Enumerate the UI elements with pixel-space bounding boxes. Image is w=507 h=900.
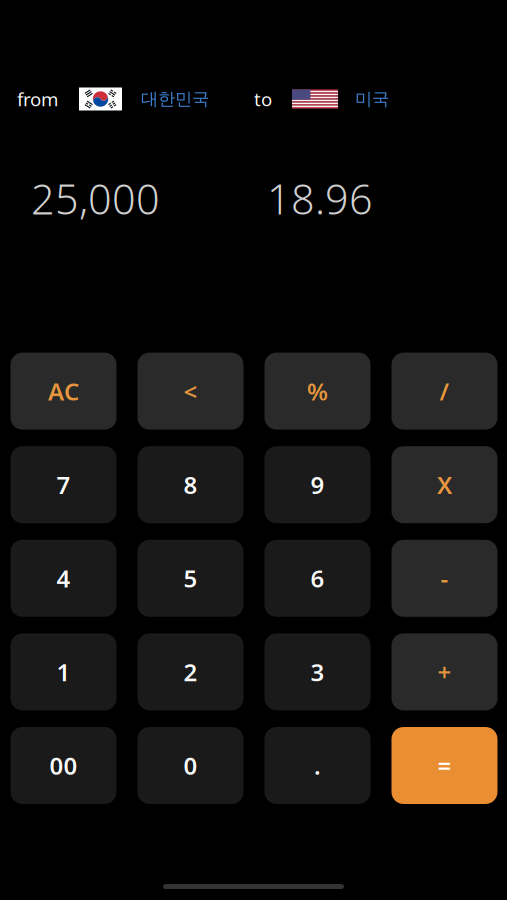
staticText: 3 (310, 656, 324, 688)
button[interactable]: 5 (137, 540, 243, 617)
staticText: 25,000 (31, 171, 160, 226)
button[interactable]: 9 (264, 446, 370, 523)
button[interactable]: 대한민국 (79, 87, 209, 110)
button[interactable]: 미국 (292, 88, 389, 110)
button[interactable]: 3 (264, 633, 370, 710)
button[interactable]: 00 (10, 727, 116, 804)
button[interactable]: / (391, 353, 497, 430)
staticText: . (314, 750, 321, 781)
button[interactable]: AC (10, 353, 116, 430)
staticText: from (17, 87, 58, 111)
staticText: 대한민국 (141, 88, 209, 110)
button[interactable]: % (264, 353, 370, 430)
staticText: 18.96 (267, 171, 373, 226)
button[interactable]: 4 (10, 540, 116, 617)
button[interactable]: . (264, 727, 370, 804)
button[interactable]: 1 (10, 633, 116, 710)
staticText: 4 (56, 562, 70, 594)
staticText: X (437, 469, 452, 501)
staticText: 1 (56, 656, 70, 688)
staticText: + (437, 656, 451, 688)
staticText: - (440, 562, 448, 594)
staticText: AC (48, 375, 79, 407)
button[interactable]: 6 (264, 540, 370, 617)
button[interactable]: - (391, 540, 497, 617)
staticText: = (437, 750, 451, 781)
staticText: 미국 (355, 88, 389, 110)
staticText: 00 (49, 750, 77, 781)
staticText: % (307, 375, 328, 407)
button[interactable]: = (391, 727, 497, 804)
staticText: to (254, 87, 272, 111)
staticText: / (439, 375, 449, 407)
button[interactable]: + (391, 633, 497, 710)
staticText: < (183, 375, 197, 407)
staticText: 0 (183, 750, 197, 781)
staticText: 9 (310, 469, 324, 501)
button[interactable]: X (391, 446, 497, 523)
staticText: 2 (183, 656, 197, 688)
button[interactable]: 8 (137, 446, 243, 523)
button[interactable]: 7 (10, 446, 116, 523)
button[interactable]: < (137, 353, 243, 430)
staticText: 7 (56, 469, 70, 501)
button[interactable]: 2 (137, 633, 243, 710)
staticText: 6 (310, 562, 324, 594)
button[interactable]: 0 (137, 727, 243, 804)
staticText: 8 (183, 469, 197, 501)
staticText: 5 (183, 562, 197, 594)
